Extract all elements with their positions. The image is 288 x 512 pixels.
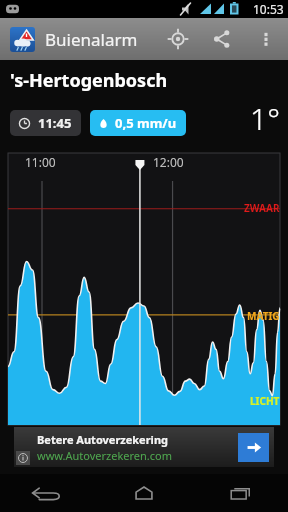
staticText: www.Autoverzekeren.com xyxy=(37,448,172,463)
staticText: 10:53 xyxy=(253,1,284,17)
button[interactable]: Betere Autoverzekering xyxy=(14,427,274,467)
staticText: Buienalarm xyxy=(45,28,138,51)
button[interactable]: Go xyxy=(238,433,269,462)
staticText: 's-Hertogenbosch xyxy=(10,68,168,93)
button[interactable]: Rain forecast graph xyxy=(8,153,280,425)
staticText: MATIG xyxy=(247,309,280,323)
staticText: 12:00 xyxy=(153,154,184,170)
staticText: 11:45 xyxy=(38,114,72,132)
other: Ad info xyxy=(16,451,30,465)
staticText: LICHT xyxy=(250,394,280,408)
staticText: Betere Autoverzekering xyxy=(37,432,168,447)
staticText: 11:00 xyxy=(25,154,56,170)
button[interactable]: Buienalarm xyxy=(10,27,35,52)
staticText: 0,5 mm/u xyxy=(115,114,177,132)
staticText: ZWAAR xyxy=(244,201,280,215)
button[interactable]: Home xyxy=(96,474,192,512)
button[interactable]: Recent apps xyxy=(192,474,288,512)
button[interactable]: Share xyxy=(200,18,244,60)
button[interactable]: My location xyxy=(156,18,200,60)
button[interactable]: More options xyxy=(244,18,288,60)
button[interactable]: 11:45 xyxy=(10,110,81,136)
button[interactable]: 0,5 mm/u xyxy=(90,110,186,136)
staticText: 1° xyxy=(250,98,280,139)
button[interactable]: Back xyxy=(0,474,96,512)
